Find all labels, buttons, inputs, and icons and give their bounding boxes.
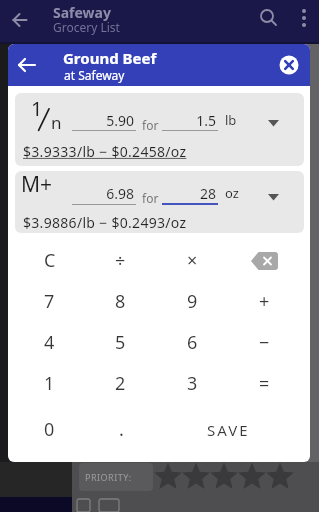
button[interactable]: 1 [14,363,85,404]
staticText: − [259,330,270,355]
staticText: Ground Beef [63,48,157,68]
staticText: 28 [162,184,216,203]
staticText: 5.90 [72,111,134,130]
button[interactable] [257,7,279,29]
staticText: at Safeway [64,67,125,83]
staticText: 5 [115,330,126,355]
staticText: SAVE [207,420,250,440]
button[interactable]: 2 [85,363,156,404]
staticText: × [187,248,198,273]
button[interactable]: 8 [85,281,156,322]
staticText: for [142,117,159,133]
staticText: M+ [21,171,53,199]
staticText: 2 [115,371,126,396]
staticText: 1 [44,371,55,396]
staticText: 6 [187,330,198,355]
button[interactable]: 0 [14,409,85,450]
button[interactable]: SAVE [157,409,300,450]
staticText: Safeway [53,3,111,22]
button[interactable]: 4 [14,322,85,363]
staticText: ÷ [115,248,126,273]
staticText: oz [225,184,239,202]
staticText: . [119,417,124,442]
button[interactable] [279,55,299,75]
staticText: + [259,289,270,314]
button[interactable]: 3 [156,363,228,404]
staticText: 1 [31,95,43,122]
staticText: 0 [44,417,55,442]
button[interactable]: 5 [85,322,156,363]
staticText: $3.9886/lb − $0.2493/oz [23,213,187,232]
button[interactable]: ÷ [85,240,156,281]
staticText: 8 [115,289,126,314]
staticText: PRIORITY: [85,471,132,483]
button[interactable]: 1 [15,93,304,166]
button[interactable] [228,240,300,281]
button[interactable]: Safeway [0,0,319,42]
staticText: C [44,248,56,273]
staticText: 1.5 [162,111,216,130]
button[interactable]: × [156,240,228,281]
button[interactable] [294,7,314,27]
button[interactable] [15,53,39,77]
button[interactable]: . [85,409,157,450]
staticText: = [259,371,270,396]
button[interactable]: − [228,322,300,363]
staticText: n [51,111,62,134]
staticText: for [142,190,159,206]
button[interactable]: C [14,240,85,281]
button[interactable]: 6 [156,322,228,363]
staticText: 9 [187,289,198,314]
button[interactable]: + [228,281,300,322]
staticText: 3 [187,371,198,396]
staticText: 6.98 [72,184,134,203]
staticText: $3.9333/lb − $0.2458/oz [23,142,187,161]
staticText: lb [225,111,237,129]
button[interactable] [8,8,32,32]
staticText: Grocery List [53,19,120,35]
button[interactable]: M+ [15,171,304,233]
button[interactable]: 9 [156,281,228,322]
button[interactable]: = [228,363,300,404]
button[interactable]: 7 [14,281,85,322]
staticText: 4 [44,330,55,355]
staticText: 7 [44,289,55,314]
